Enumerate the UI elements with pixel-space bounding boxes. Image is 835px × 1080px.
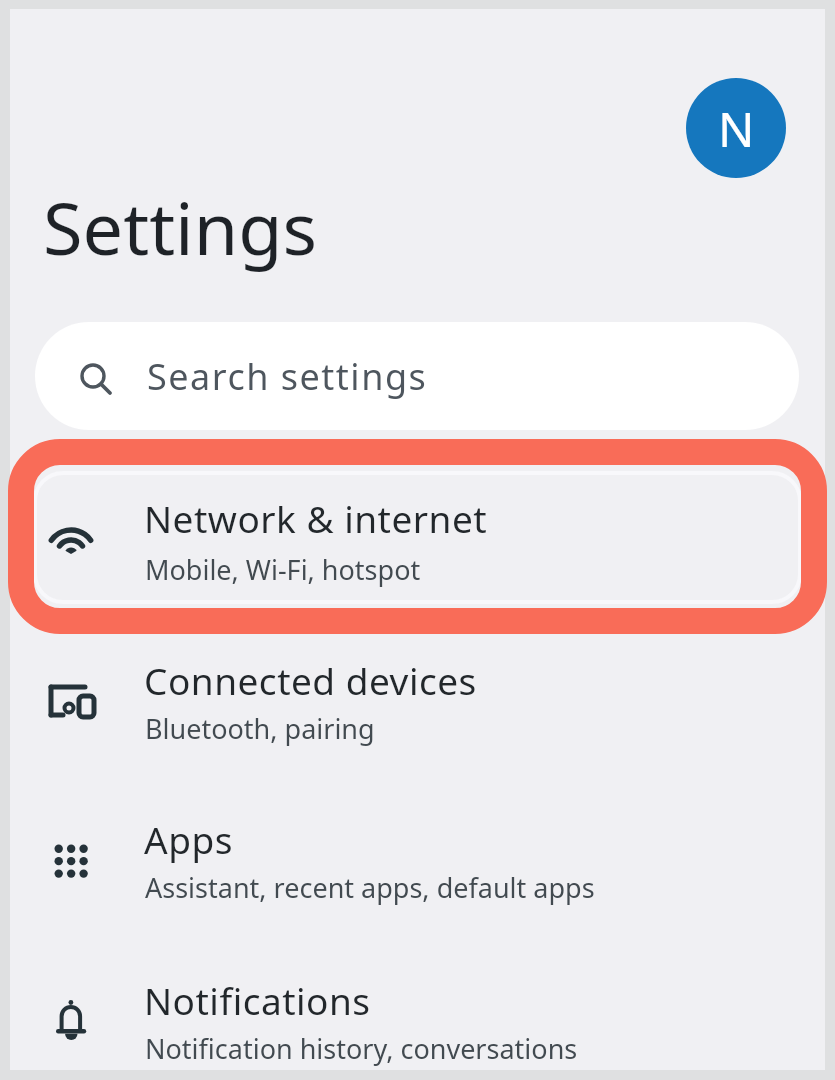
staticText: Mobile, Wi-Fi, hotspot	[145, 551, 421, 588]
staticText: Settings	[43, 178, 317, 276]
button[interactable]	[34, 472, 801, 603]
staticText: Assistant, recent apps, default apps	[145, 869, 595, 906]
staticText: Network & internet	[144, 493, 488, 543]
button[interactable]: N	[686, 78, 786, 178]
button[interactable]: Search settings	[35, 322, 799, 430]
button[interactable]	[10, 644, 825, 764]
staticText: Connected devices	[144, 655, 477, 705]
staticText: N	[718, 96, 755, 161]
button[interactable]	[10, 964, 825, 1080]
staticText: Notification history, conversations	[145, 1030, 578, 1067]
staticText: Notifications	[144, 975, 371, 1025]
button[interactable]	[10, 804, 825, 924]
staticText: Apps	[144, 814, 233, 864]
staticText: Search settings	[147, 352, 428, 401]
staticText: Bluetooth, pairing	[145, 710, 375, 747]
